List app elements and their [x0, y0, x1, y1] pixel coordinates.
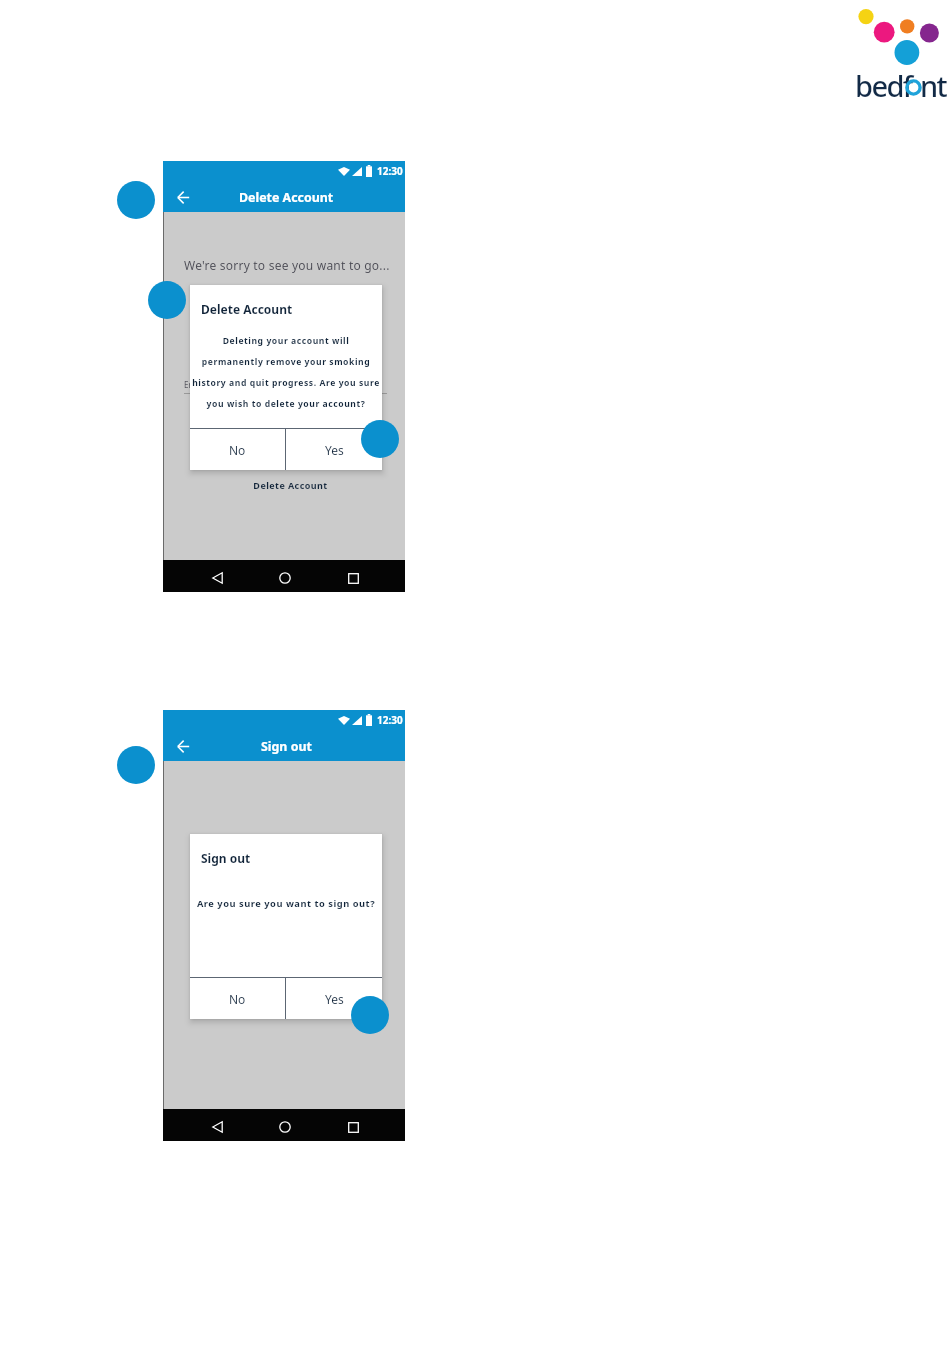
button[interactable]: Back	[204, 565, 230, 591]
staticText: bedf	[855, 66, 912, 105]
staticText: No	[229, 442, 246, 458]
staticText: Sign out	[261, 738, 312, 755]
button[interactable]: Yes	[286, 429, 382, 470]
button[interactable]: Back	[172, 186, 194, 208]
staticText: Email	[184, 379, 205, 390]
button[interactable]: Delete Account	[163, 479, 405, 491]
staticText: Yes	[325, 991, 344, 1007]
button[interactable]: Home	[272, 1114, 298, 1140]
button[interactable]: Yes	[286, 978, 382, 1019]
staticText: nt	[920, 66, 947, 105]
staticText: We're sorry to see you want to go...	[184, 257, 390, 273]
staticText: Deleting your account will permanently r…	[190, 335, 382, 410]
staticText: Yes	[325, 442, 344, 458]
button[interactable]: Recent apps	[340, 565, 366, 591]
button[interactable]: Back	[204, 1114, 230, 1140]
staticText: Sign out	[201, 850, 251, 866]
staticText: No	[229, 991, 246, 1007]
button[interactable]: Back	[172, 735, 194, 757]
staticText: Are you sure you want to sign out?	[190, 897, 382, 910]
button[interactable]: No	[190, 978, 285, 1019]
staticText: Delete Account	[239, 189, 334, 206]
staticText: 12:30	[377, 164, 403, 178]
staticText: 12:30	[377, 713, 403, 727]
button[interactable]: No	[190, 429, 285, 470]
staticText: Delete Account	[201, 301, 293, 317]
button[interactable]: Recent apps	[340, 1114, 366, 1140]
button[interactable]: Home	[272, 565, 298, 591]
